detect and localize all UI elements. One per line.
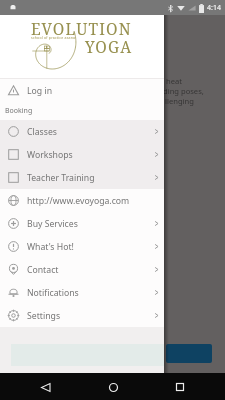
staticText: Log in xyxy=(27,85,53,97)
button[interactable]: http://www.evoyoga.com xyxy=(0,189,164,212)
staticText: heat xyxy=(166,76,182,86)
staticText: Settings xyxy=(27,310,61,322)
button[interactable]: Back xyxy=(34,376,56,398)
button[interactable]: What's Hot! xyxy=(0,235,164,258)
button[interactable] xyxy=(166,344,212,363)
staticText: 4:14 xyxy=(207,3,221,13)
staticText: Buy Services xyxy=(27,218,78,230)
staticText: school of practice asana xyxy=(31,35,76,40)
staticText: What's Hot! xyxy=(27,241,74,253)
button[interactable]: Buy Services xyxy=(0,212,164,235)
button[interactable]: Recent apps xyxy=(169,376,191,398)
staticText: Booking xyxy=(5,106,33,116)
button[interactable]: Teacher Training xyxy=(0,166,164,189)
staticText: ding poses, xyxy=(163,86,204,96)
button[interactable]: Settings xyxy=(0,304,164,327)
button[interactable]: Home xyxy=(102,376,124,398)
staticText: Classes xyxy=(27,126,57,138)
staticText: YOGA xyxy=(85,36,133,57)
button[interactable]: Contact xyxy=(0,258,164,281)
staticText: EVOLUTION xyxy=(31,18,132,39)
staticText: llenging xyxy=(165,96,194,106)
staticText: Notifications xyxy=(27,287,79,299)
staticText: Contact xyxy=(27,264,59,276)
staticText: Teacher Training xyxy=(27,172,95,184)
button[interactable]: Log in xyxy=(0,79,164,102)
button[interactable]: Notifications xyxy=(0,281,164,304)
button[interactable]: Workshops xyxy=(0,143,164,166)
button[interactable]: Classes xyxy=(0,120,164,143)
staticText: Workshops xyxy=(27,149,73,161)
staticText: http://www.evoyoga.com xyxy=(27,195,130,207)
